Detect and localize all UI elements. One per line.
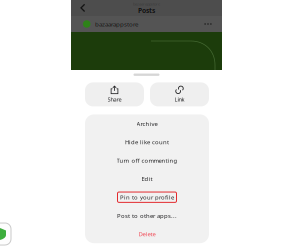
staticText: Link (174, 96, 184, 103)
staticText: Hide like count (125, 138, 169, 146)
button[interactable]: Turn off commenting (85, 151, 209, 170)
button[interactable]: Archive (85, 114, 209, 133)
staticText: Turn off commenting (116, 156, 177, 164)
button[interactable]: Pin to your profile (85, 188, 209, 206)
staticText: Posts (138, 6, 155, 15)
staticText: bazaarappstore (133, 1, 160, 6)
button[interactable]: More options (202, 19, 214, 29)
button[interactable]: Hide like count (85, 133, 209, 151)
staticText: Archive (136, 120, 157, 128)
staticText: bazaarappstore (95, 20, 138, 28)
staticText: Edit (141, 175, 152, 183)
button[interactable]: Delete (85, 225, 209, 243)
button[interactable]: Back (71, 0, 95, 16)
button[interactable]: Link (150, 82, 209, 106)
button[interactable]: Edit (85, 170, 209, 188)
staticText: Post to other apps... (117, 212, 177, 220)
staticText: Share (107, 96, 121, 103)
button[interactable]: Share (85, 82, 144, 106)
button[interactable]: Post to other apps... (85, 206, 209, 225)
staticText: Pin to your profile (120, 193, 174, 201)
staticText: Delete (138, 230, 155, 238)
